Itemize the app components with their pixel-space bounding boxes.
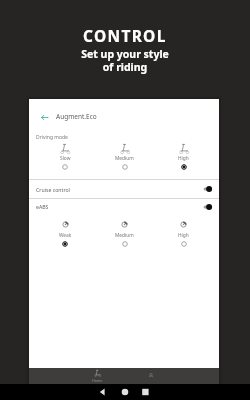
staticText: Weak [59, 232, 72, 239]
staticText: Driving mode [36, 134, 68, 141]
staticText: eABS [36, 203, 49, 210]
staticText: CONTROL [83, 25, 167, 46]
staticText: Augment.Eco [56, 112, 97, 121]
button[interactable]: Home [71, 368, 124, 384]
button[interactable]: Back [37, 110, 51, 124]
staticText: High [178, 232, 189, 239]
button[interactable]: Medium [95, 144, 154, 170]
button[interactable]: High [154, 144, 213, 170]
button[interactable]: Cruise control [36, 180, 212, 198]
button[interactable]: eABS [36, 199, 212, 214]
button[interactable]: High [154, 221, 213, 247]
button[interactable]: Medium [95, 221, 154, 247]
staticText: Home [92, 378, 103, 383]
staticText: Medium [115, 232, 134, 239]
button[interactable]: Profile [124, 368, 177, 384]
button[interactable]: Slow [35, 144, 95, 170]
staticText: High [178, 155, 189, 162]
staticText: Cruise control [36, 186, 70, 193]
staticText: Slow [60, 155, 71, 162]
button[interactable]: Weak [35, 221, 95, 247]
staticText: Medium [115, 155, 134, 162]
staticText: Set up your style of riding [81, 47, 169, 74]
